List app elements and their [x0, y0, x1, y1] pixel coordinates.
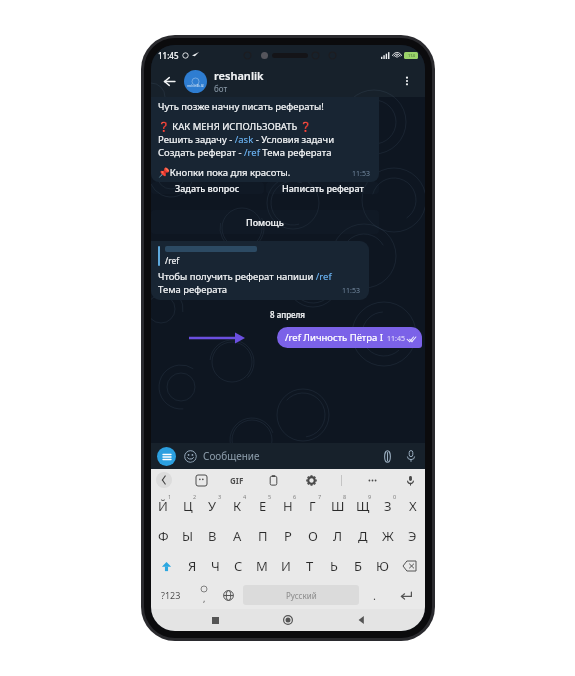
staticText: 📌Кнопки пока для красоты. [158, 166, 352, 179]
staticText: /ref Личность Пётра I [285, 331, 383, 344]
button[interactable]: Voice input [402, 472, 418, 488]
button[interactable]: Русский [243, 585, 359, 605]
staticText: Русский [286, 590, 317, 601]
button[interactable]: Л [325, 521, 350, 551]
button[interactable]: К [225, 491, 250, 521]
staticText: З [384, 497, 392, 515]
button[interactable]: Change language [216, 581, 240, 609]
staticText: 7 [318, 493, 322, 500]
staticText: О [308, 527, 318, 545]
button[interactable]: Emoji [183, 449, 197, 463]
button[interactable]: Г [300, 491, 325, 521]
staticText: 4 [243, 493, 247, 500]
staticText: С [234, 557, 243, 575]
button[interactable]: Р [275, 521, 300, 551]
staticText: В [208, 527, 217, 545]
staticText: Я [188, 557, 197, 575]
button[interactable]: Ю [370, 551, 394, 581]
button[interactable]: reshanlik AI [184, 70, 207, 93]
staticText: И [281, 557, 291, 575]
staticText: 2 [193, 493, 197, 500]
button[interactable]: . [362, 581, 386, 609]
staticText: М [256, 557, 268, 575]
button[interactable]: Attach [379, 448, 395, 464]
button[interactable]: М [250, 551, 274, 581]
button[interactable]: Е [250, 491, 275, 521]
staticText: Ш [331, 497, 345, 515]
button[interactable]: А [225, 521, 250, 551]
button[interactable]: Я [181, 551, 204, 581]
button[interactable]: Ч [204, 551, 227, 581]
button[interactable]: Д [350, 521, 375, 551]
staticText: Чуть позже начну писать рефераты! [158, 100, 324, 113]
staticText: Л [333, 527, 343, 545]
staticText: Г [309, 497, 316, 515]
button[interactable]: Э [400, 521, 425, 551]
button[interactable]: More [364, 472, 380, 488]
button[interactable]: Recent apps [206, 611, 224, 629]
staticText: /ref [165, 255, 180, 267]
button[interactable]: GIF [230, 475, 244, 486]
button[interactable]: С [227, 551, 250, 581]
button[interactable]: П [250, 521, 275, 551]
button[interactable]: Б [346, 551, 370, 581]
staticText: Р [284, 527, 292, 545]
button[interactable]: Ь [322, 551, 346, 581]
button[interactable]: Back [352, 611, 370, 629]
button[interactable]: Backspace [394, 551, 425, 581]
button[interactable]: Enter [386, 581, 425, 609]
button[interactable]: More options [396, 70, 418, 92]
button[interactable]: /ref [151, 241, 369, 300]
staticText: 11:45 [387, 334, 405, 344]
button[interactable]: Чуть позже начну писать рефераты! [151, 97, 379, 182]
button[interactable]: Menu [157, 447, 176, 466]
staticText: Ж [382, 527, 394, 545]
button[interactable]: Back [156, 472, 172, 488]
button[interactable]: Clipboard [265, 472, 281, 488]
button[interactable]: /ref Личность Пётра I [277, 327, 422, 348]
staticText: Б [354, 557, 362, 575]
button[interactable]: Ф [151, 521, 175, 551]
button[interactable]: Задать вопрос [151, 182, 264, 194]
button[interactable]: З [375, 491, 400, 521]
button[interactable]: Back [158, 70, 180, 92]
staticText: Ю [376, 557, 389, 575]
button[interactable]: Ж [375, 521, 400, 551]
button[interactable]: Voice message [403, 448, 419, 464]
button[interactable]: У [200, 491, 225, 521]
staticText: Ч [211, 557, 220, 575]
button[interactable]: И [274, 551, 298, 581]
button[interactable]: Emoji and comma [191, 581, 216, 609]
button[interactable]: В [200, 521, 225, 551]
button[interactable]: Ш [325, 491, 350, 521]
staticText: ❓ КАК МЕНЯ ИСПОЛЬЗОВАТЬ ❓ [158, 120, 312, 133]
button[interactable]: Т [298, 551, 322, 581]
button[interactable]: Settings [303, 472, 319, 488]
staticText: Х [409, 497, 417, 515]
staticText: Т [306, 557, 314, 575]
staticText: Тема реферата [158, 283, 228, 296]
staticText: 11:53 [352, 169, 370, 179]
button[interactable]: ?123 [151, 581, 191, 609]
staticText: Э [408, 527, 417, 545]
button[interactable]: Й [151, 491, 175, 521]
staticText: Создать реферат - /ref Тема реферата [158, 146, 332, 159]
button[interactable]: Х [400, 491, 425, 521]
button[interactable]: Ц [175, 491, 200, 521]
button[interactable]: Shift [151, 551, 181, 581]
button[interactable]: Щ [350, 491, 375, 521]
button[interactable]: Н [275, 491, 300, 521]
button[interactable]: Ы [175, 521, 200, 551]
staticText: бот [214, 83, 228, 94]
button[interactable]: Home [279, 611, 297, 629]
button[interactable]: Написать реферат [266, 182, 379, 194]
button[interactable]: reshanlik [214, 68, 396, 94]
staticText: П [258, 527, 268, 545]
staticText: Ц [183, 497, 193, 515]
button[interactable]: Помощь [151, 210, 379, 234]
staticText: Н [283, 497, 293, 515]
staticText: Ф [158, 527, 169, 545]
staticText: reshanlik [214, 68, 264, 83]
button[interactable]: Sticker [193, 472, 209, 488]
button[interactable]: О [300, 521, 325, 551]
